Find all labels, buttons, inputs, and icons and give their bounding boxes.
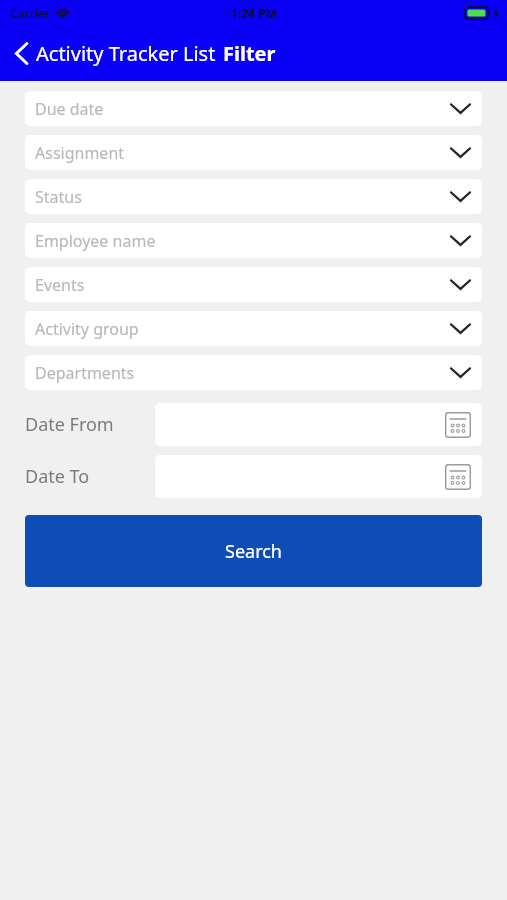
other: Pick date — [445, 464, 471, 490]
staticText: Status — [35, 186, 82, 208]
button[interactable]: Status — [25, 179, 482, 214]
staticText: Date To — [25, 464, 90, 489]
button[interactable]: Search — [25, 515, 482, 587]
button[interactable]: Due date — [25, 91, 482, 126]
staticText: Activity Tracker List — [36, 40, 216, 67]
button[interactable]: Back — [14, 40, 276, 67]
button[interactable]: Events — [25, 267, 482, 302]
staticText: Carrier — [10, 5, 50, 21]
button[interactable]: Employee name — [25, 223, 482, 258]
staticText: Date From — [25, 412, 114, 437]
staticText: 1:24 PM — [231, 5, 277, 21]
staticText: Departments — [35, 362, 135, 384]
other: Pick date — [445, 412, 471, 438]
button[interactable]: Pick date — [155, 455, 482, 498]
staticText: Activity group — [35, 318, 139, 340]
staticText: Events — [35, 274, 85, 296]
staticText: Assignment — [35, 142, 125, 164]
button[interactable]: Assignment — [25, 135, 482, 170]
staticText: Due date — [35, 98, 104, 120]
staticText: Filter — [223, 40, 276, 67]
button[interactable]: Pick date — [155, 403, 482, 446]
staticText: Search — [225, 539, 282, 564]
button[interactable]: Activity group — [25, 311, 482, 346]
button[interactable]: Departments — [25, 355, 482, 390]
staticText: Employee name — [35, 230, 156, 252]
